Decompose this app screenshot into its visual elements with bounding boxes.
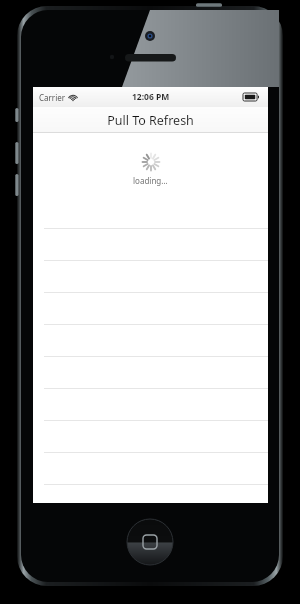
staticText: Carrier (39, 92, 66, 103)
other: Loading (142, 153, 160, 171)
button[interactable] (33, 389, 268, 421)
button[interactable] (33, 293, 268, 325)
button[interactable] (33, 325, 268, 357)
button[interactable] (33, 421, 268, 453)
button[interactable] (33, 229, 268, 261)
staticText: 12:06 PM (132, 91, 170, 103)
button[interactable] (33, 357, 268, 389)
button[interactable] (33, 261, 268, 293)
button[interactable] (33, 453, 268, 485)
staticText: loading... (133, 175, 168, 186)
staticText: Pull To Refresh (107, 112, 194, 129)
button[interactable] (33, 197, 268, 229)
